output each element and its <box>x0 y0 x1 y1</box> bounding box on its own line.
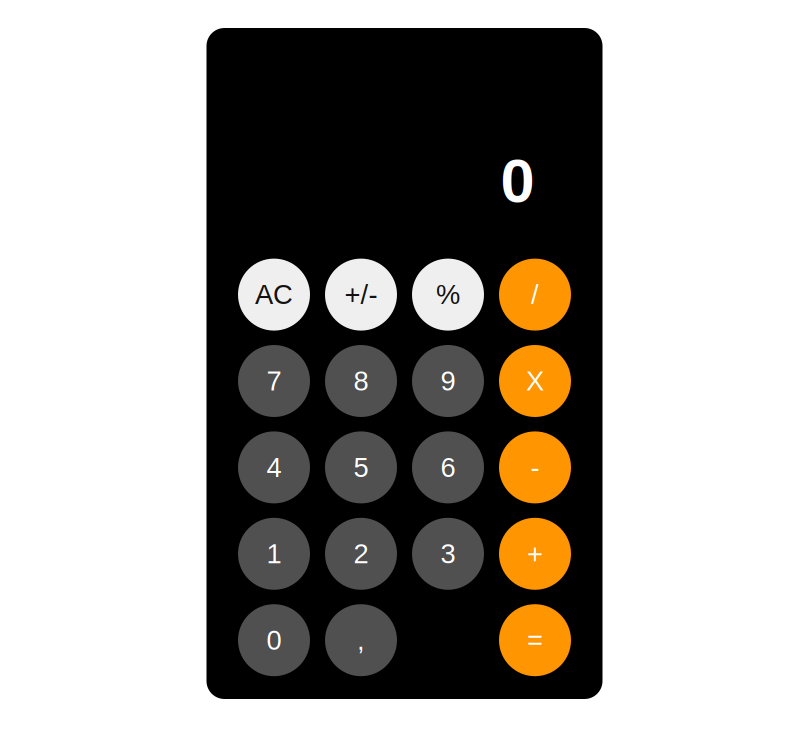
button[interactable]: 7 <box>238 345 310 417</box>
button[interactable]: 1 <box>238 518 310 590</box>
staticText: + <box>527 538 543 569</box>
staticText: , <box>357 625 365 655</box>
button[interactable]: 0 <box>238 604 310 676</box>
button[interactable]: 3 <box>412 518 484 590</box>
button[interactable]: Divide <box>499 259 571 331</box>
button[interactable]: Plus <box>499 518 571 590</box>
staticText: - <box>530 452 539 483</box>
button[interactable]: All clear <box>238 259 310 331</box>
staticText: % <box>436 279 460 310</box>
button[interactable]: Plus minus <box>325 259 397 331</box>
button[interactable]: Percent <box>412 259 484 331</box>
button[interactable]: 5 <box>325 431 397 503</box>
staticText: +/- <box>344 279 377 310</box>
button[interactable]: 9 <box>412 345 484 417</box>
staticText: 9 <box>440 366 455 396</box>
staticText: 0 <box>500 146 534 215</box>
staticText: 0 <box>266 625 281 655</box>
staticText: 5 <box>353 452 368 483</box>
staticText: 2 <box>353 538 368 569</box>
button[interactable]: Equals <box>499 604 571 676</box>
staticText: = <box>527 625 543 655</box>
button[interactable]: Minus <box>499 431 571 503</box>
button[interactable]: 8 <box>325 345 397 417</box>
staticText: 8 <box>353 366 368 396</box>
button[interactable]: Multiply <box>499 345 571 417</box>
button[interactable]: 4 <box>238 431 310 503</box>
staticText: 7 <box>266 366 281 396</box>
staticText: 3 <box>440 538 455 569</box>
staticText: AC <box>255 279 293 310</box>
staticText: X <box>526 366 544 396</box>
staticText: 1 <box>266 538 281 569</box>
staticText: 6 <box>440 452 455 483</box>
button[interactable]: 2 <box>325 518 397 590</box>
button[interactable]: Decimal separator <box>325 604 397 676</box>
staticText: / <box>531 279 539 310</box>
button[interactable]: 6 <box>412 431 484 503</box>
staticText: 4 <box>266 452 281 483</box>
